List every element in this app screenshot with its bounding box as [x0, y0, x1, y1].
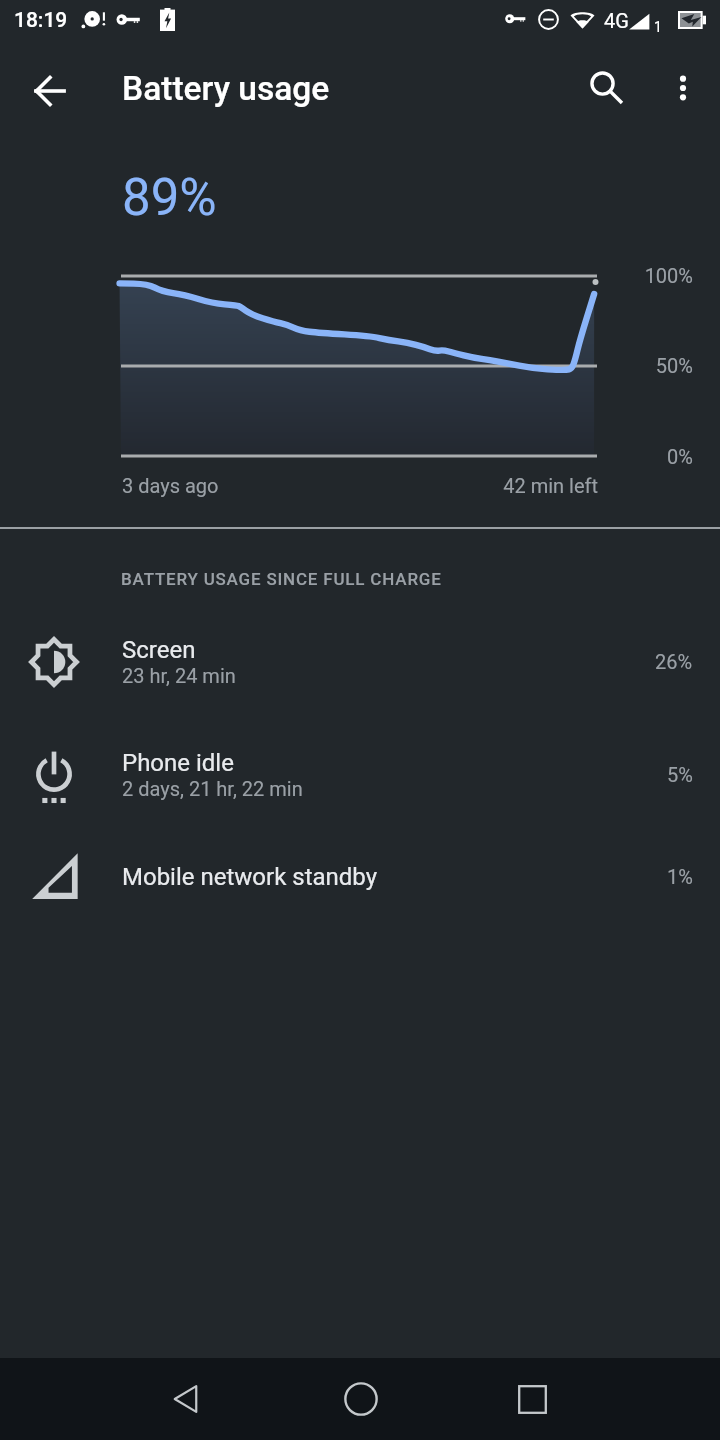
- staticText: 1%: [667, 865, 693, 888]
- staticText: 23 hr, 24 min: [122, 664, 236, 687]
- button[interactable]: Recents: [491, 1358, 573, 1440]
- staticText: Battery usage: [122, 69, 330, 108]
- button[interactable]: Mobile network standby: [0, 820, 720, 933]
- staticText: 26%: [655, 650, 693, 673]
- button[interactable]: Back: [144, 1358, 226, 1440]
- button[interactable]: Screen: [0, 605, 720, 718]
- staticText: 18:19: [14, 8, 68, 33]
- staticText: Mobile network standby: [122, 863, 378, 891]
- staticText: 0%: [600, 445, 693, 468]
- staticText: Phone idle: [122, 749, 234, 777]
- button[interactable]: Home: [320, 1358, 402, 1440]
- button[interactable]: Navigate up: [19, 60, 81, 122]
- staticText: 1: [654, 19, 662, 35]
- staticText: 5%: [667, 763, 693, 786]
- staticText: 89%: [122, 168, 217, 228]
- staticText: 42 min left: [300, 474, 598, 497]
- staticText: BATTERY USAGE SINCE FULL CHARGE: [121, 569, 442, 589]
- staticText: 2 days, 21 hr, 22 min: [122, 777, 303, 800]
- button[interactable]: More options: [655, 60, 711, 116]
- staticText: 4G: [604, 9, 629, 32]
- button[interactable]: Search: [579, 60, 635, 116]
- button[interactable]: Phone idle: [0, 718, 720, 831]
- staticText: Screen: [122, 636, 196, 664]
- staticText: 50%: [600, 354, 693, 377]
- staticText: 100%: [600, 264, 693, 287]
- staticText: 3 days ago: [122, 474, 219, 497]
